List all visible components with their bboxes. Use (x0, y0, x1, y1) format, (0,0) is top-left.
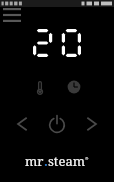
staticText: mr (25, 152, 44, 170)
staticText: . (44, 152, 48, 170)
button[interactable]: Timer (66, 79, 82, 95)
staticText: ® (85, 156, 89, 161)
button[interactable]: Menu (3, 8, 21, 22)
staticText: steam (48, 152, 85, 170)
button[interactable]: Previous (12, 113, 32, 135)
button[interactable]: Temperature (32, 79, 48, 95)
button[interactable]: Next (82, 113, 102, 135)
button[interactable]: Power (46, 113, 68, 135)
